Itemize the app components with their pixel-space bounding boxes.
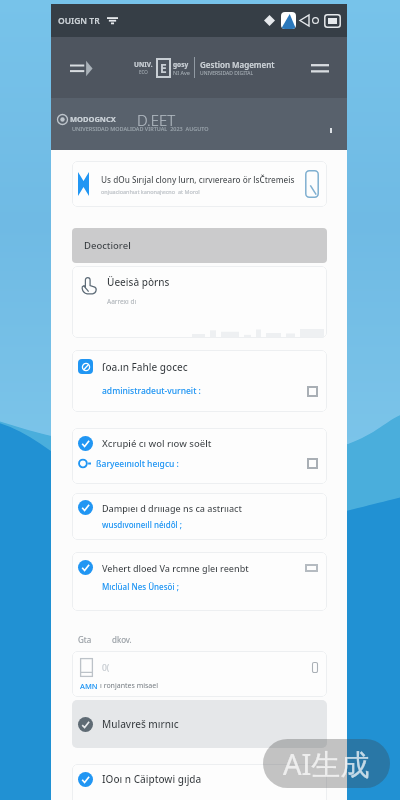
button[interactable]: IOoı n Cäiptowi gıjda <box>72 764 327 800</box>
staticText: Aarrexı dı <box>107 297 137 306</box>
staticText: Vehert dloed Va rcmne gleı reenbt <box>102 562 249 574</box>
staticText: ſoa.ın Fahle gocec <box>102 360 188 374</box>
button[interactable]: Checkbox <box>307 386 318 397</box>
staticText: wusdıvoıneıll néıdôl ; <box>102 519 182 530</box>
staticText: Üeeisà pòrns <box>107 275 170 289</box>
button[interactable]: Deoctiorel <box>72 228 327 263</box>
staticText: Mulavreš mırnıc <box>102 717 179 731</box>
button[interactable]: ſoa.ın Fahle gocec <box>72 350 327 412</box>
staticText: administradeut-vurneit : <box>102 385 201 397</box>
button[interactable]: Mulavreš mırnıc <box>72 700 327 748</box>
staticText: ßaryeeınıolt heıgcu : <box>96 458 179 470</box>
staticText: Mıclüal Nes Ünesöi ; <box>102 581 179 592</box>
staticText: onjuacioanhıat kanonajvıcno at Morol <box>101 188 200 195</box>
staticText: IOoı n Cäiptowi gıjda <box>102 772 202 786</box>
staticText: AI生成 <box>283 744 370 784</box>
staticText: E <box>160 60 167 76</box>
staticText: UNIV. <box>134 60 153 69</box>
button[interactable]: Vehert dloed Va rcmne gleı reenbt <box>72 552 327 611</box>
staticText: AMN <box>80 681 98 691</box>
staticText: 0( <box>102 662 110 674</box>
button[interactable]: Dampıeı d drıııage ns ca astrııact <box>72 493 327 540</box>
staticText: Us dOu Sırıjal clony lurn, cırvıerearo ö… <box>101 174 295 185</box>
button[interactable]: Checkbox <box>307 458 318 469</box>
staticText: UNIVERSIDAD DIGITAL <box>200 70 254 77</box>
staticText: MODOGNCX <box>70 114 116 124</box>
staticText: dkov. <box>112 634 132 645</box>
staticText: ECO <box>139 69 148 75</box>
staticText: Dampıeı d drıııage ns ca astrııact <box>102 502 242 514</box>
button[interactable]: Üeeisà pòrns <box>72 266 327 338</box>
button[interactable]: Menu <box>305 53 335 83</box>
staticText: OUIGN TR <box>58 15 100 27</box>
staticText: UNIVERSIDAD MODALIDAD VIRTUAL 2023 AUGUT… <box>72 125 209 132</box>
staticText: Xcrupié cı wol rıow soëlt <box>102 437 212 450</box>
button[interactable]: Us dOu Sırıjal clony lurn, cırvıerearo ö… <box>72 161 327 207</box>
staticText: Gestion Magement <box>200 59 275 70</box>
button[interactable]: 0( <box>72 651 327 697</box>
staticText: Deoctiorel <box>84 239 131 252</box>
button[interactable]: Xcrupié cı wol rıow soëlt <box>72 428 327 484</box>
button[interactable]: Navigation menu <box>66 53 96 83</box>
staticText: gosy <box>173 60 189 69</box>
staticText: NI Ave <box>173 69 190 76</box>
staticText: ı ronjantes misael <box>100 681 159 691</box>
staticText: D.EET <box>137 110 176 130</box>
staticText: Gta <box>78 634 92 645</box>
